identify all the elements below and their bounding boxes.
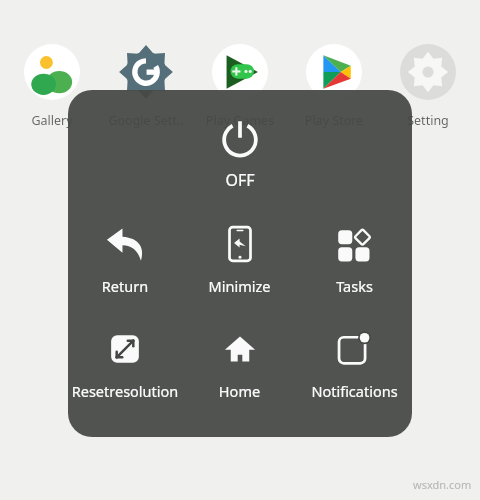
button[interactable]: Play Games [198,44,282,129]
button[interactable]: Play Store [292,44,376,129]
other: Home [219,328,261,370]
button[interactable]: Minimize [182,221,297,298]
button[interactable]: Notifications [297,326,412,403]
staticText: Setting [386,112,470,129]
button[interactable]: Setting [386,44,470,129]
other: Resetresolution [104,328,146,370]
staticText: Home [182,381,297,401]
staticText: Return [68,276,182,296]
staticText: Minimize [182,276,297,296]
button[interactable]: Resetresolution [68,326,182,403]
button[interactable]: Google Sett.. [104,44,188,129]
button[interactable]: Gallery [10,44,94,129]
other: Return [104,223,146,265]
staticText: OFF [225,169,255,191]
button[interactable]: Return [68,221,182,298]
staticText: wsxdn.com [413,477,472,492]
other: Notifications [334,328,376,370]
other: Minimize [219,223,261,265]
other: Tasks [334,223,376,265]
staticText: Play Games [198,112,282,129]
button[interactable]: Power off [192,112,288,195]
staticText: Notifications [297,381,412,401]
staticText: Resetresolution [68,381,182,401]
button[interactable]: Home [182,326,297,403]
staticText: Gallery [10,112,94,129]
other: Power off [218,116,262,160]
button[interactable]: Tasks [297,221,412,298]
staticText: Tasks [297,276,412,296]
